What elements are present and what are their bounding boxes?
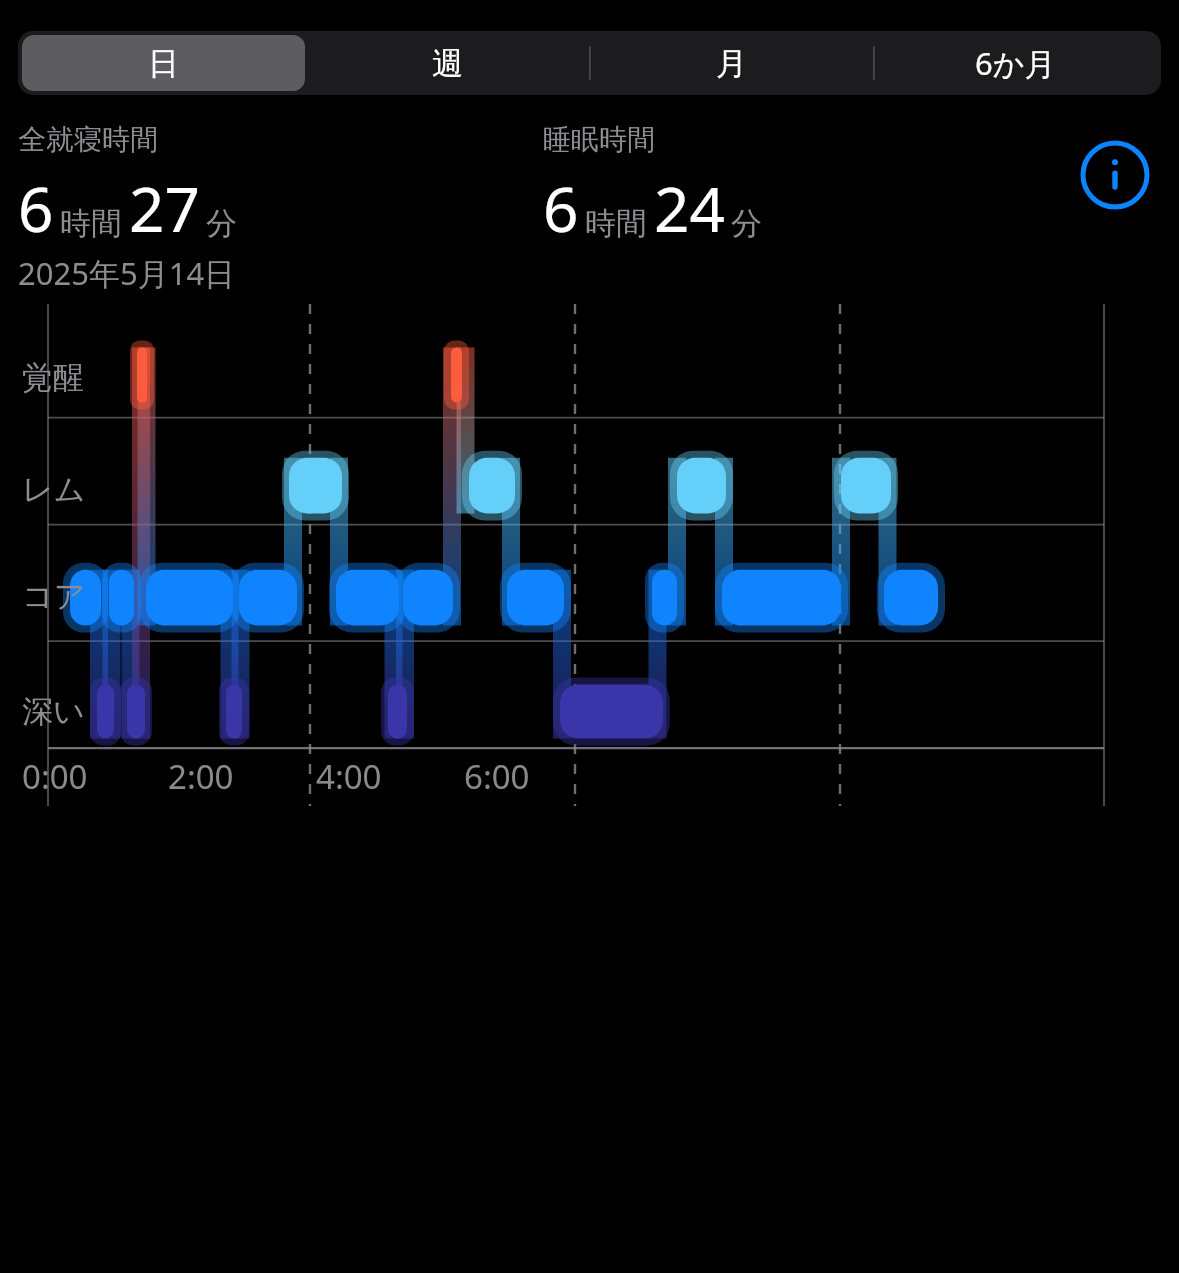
staticText: 2025年5月14日: [18, 252, 236, 294]
staticText: 睡眠時間: [543, 122, 655, 157]
button[interactable]: 6か月: [873, 35, 1157, 91]
staticText: 覚醒: [22, 358, 84, 397]
staticText: 24: [654, 166, 725, 250]
button[interactable]: 日: [22, 35, 305, 91]
staticText: 0:00: [22, 754, 88, 799]
staticText: 日: [148, 44, 179, 83]
staticText: 2:00: [168, 754, 234, 799]
staticText: 6: [18, 166, 54, 250]
staticText: 深い: [22, 692, 85, 731]
button[interactable]: 月: [589, 35, 873, 91]
staticText: 6: [543, 166, 579, 250]
staticText: 6か月: [975, 42, 1056, 84]
button[interactable]: 詳細情報: [1069, 122, 1161, 227]
staticText: 週: [432, 44, 463, 83]
staticText: コア: [22, 577, 86, 616]
staticText: 月: [716, 44, 747, 83]
staticText: レム: [22, 470, 86, 509]
staticText: 時間: [60, 204, 122, 243]
button[interactable]: 週: [305, 35, 589, 91]
staticText: 27: [129, 166, 200, 250]
staticText: 6:00: [464, 754, 530, 799]
staticText: 時間: [585, 204, 647, 243]
staticText: 分: [206, 204, 237, 243]
staticText: 分: [731, 204, 762, 243]
staticText: 4:00: [316, 754, 382, 799]
staticText: 全就寝時間: [18, 122, 158, 157]
